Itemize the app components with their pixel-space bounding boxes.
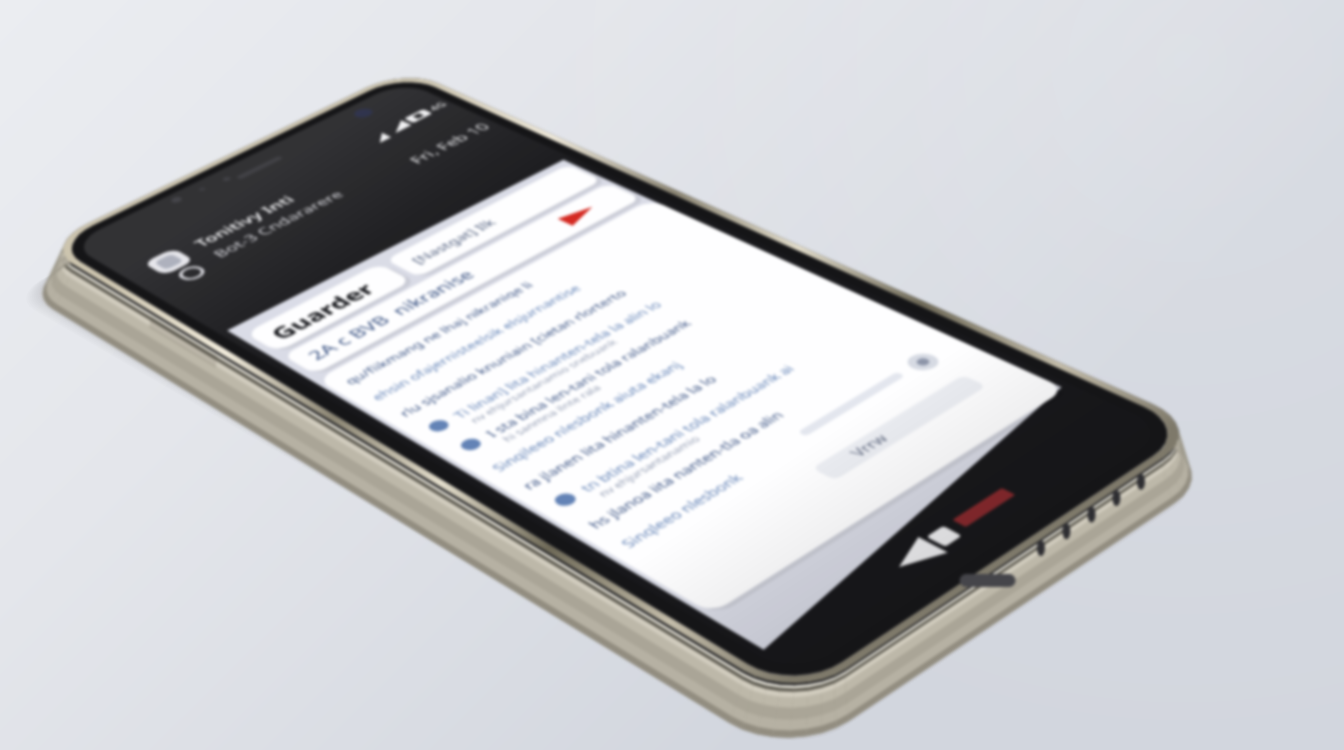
button[interactable]: Android phone showing an app screen [0, 0, 1344, 750]
